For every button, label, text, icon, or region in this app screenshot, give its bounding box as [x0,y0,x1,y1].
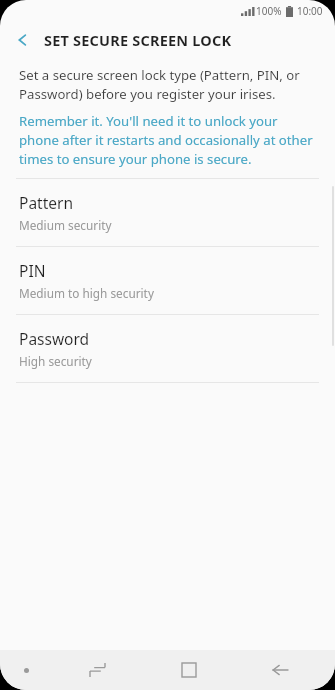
staticText: Medium security [19,217,112,233]
staticText: 10:00 [297,4,323,18]
button[interactable]: PIN [0,247,335,314]
staticText: Remember it. You'll need it to unlock yo… [19,112,316,168]
staticText: Medium to high security [19,285,154,301]
staticText: High security [19,353,92,369]
button[interactable]: Home [143,650,234,690]
button[interactable]: Pattern [0,179,335,246]
button[interactable]: Password [0,315,335,382]
button[interactable]: Back [0,22,44,58]
button[interactable]: Menu indicator [0,650,52,690]
staticText: Set a secure screen lock type (Pattern, … [19,66,316,103]
staticText: SET SECURE SCREEN LOCK [44,30,232,50]
button[interactable]: Recent apps [52,650,143,690]
staticText: PIN [19,260,46,281]
staticText: 100% [256,4,282,18]
button[interactable]: Back [234,650,325,690]
staticText: Pattern [19,192,73,213]
staticText: Password [19,328,90,349]
